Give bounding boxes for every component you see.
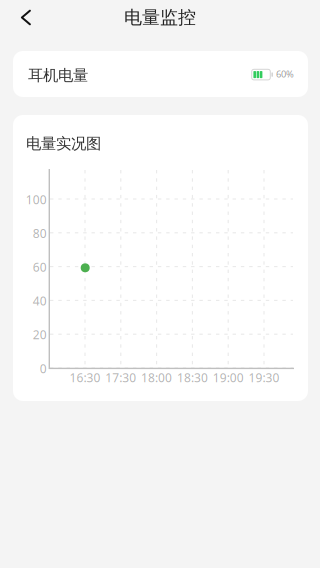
staticText: 19:00	[213, 370, 244, 385]
staticText: 100	[26, 191, 47, 207]
button[interactable]: Back	[11, 3, 41, 31]
staticText: 80	[33, 225, 47, 241]
staticText: 17:30	[105, 370, 136, 385]
staticText: 20	[33, 327, 47, 343]
staticText: 电量监控	[124, 6, 196, 29]
staticText: 60	[33, 259, 47, 275]
staticText: 40	[33, 293, 47, 309]
staticText: 0	[40, 360, 47, 376]
staticText: 60%	[276, 68, 294, 80]
staticText: 耳机电量	[28, 66, 88, 85]
staticText: 19:30	[248, 370, 279, 385]
staticText: 电量实况图	[26, 134, 101, 153]
staticText: 16:30	[69, 370, 100, 385]
staticText: 18:30	[177, 370, 208, 385]
staticText: 18:00	[141, 370, 172, 385]
